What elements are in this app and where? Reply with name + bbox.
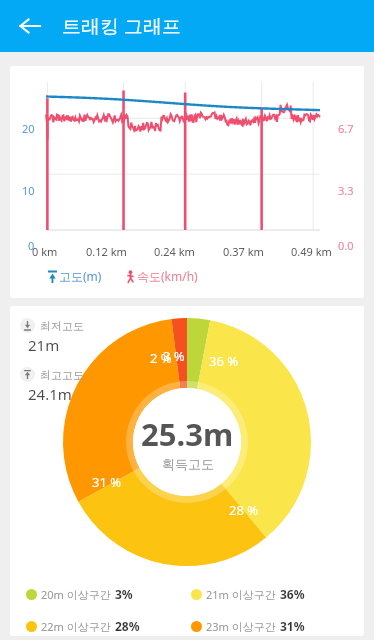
staticText: 최저고도 (40, 319, 84, 333)
staticText: 3.3 (338, 183, 354, 198)
staticText: 3 % (163, 347, 185, 365)
staticText: 22m 이상구간 (41, 619, 111, 634)
staticText: 0.24 km (154, 244, 195, 259)
staticText: 0.49 km (291, 244, 332, 259)
staticText: 고도(m) (59, 268, 102, 284)
staticText: 0.0 (338, 238, 354, 253)
button[interactable]: Back (8, 4, 52, 48)
staticText: 6.7 (338, 121, 354, 136)
staticText: 31 % (92, 473, 122, 491)
staticText: 31% (280, 618, 305, 634)
staticText: 획득고도 (162, 456, 214, 472)
staticText: 28% (115, 618, 140, 634)
staticText: 0.12 km (86, 244, 127, 259)
button[interactable]: 22m 이상구간 (26, 618, 191, 634)
button[interactable]: 20m 이상구간 (26, 586, 191, 602)
staticText: 36 % (209, 352, 239, 370)
staticText: 10 (22, 183, 35, 198)
staticText: 28 % (229, 501, 259, 519)
staticText: 0 (28, 238, 35, 253)
staticText: 최고고도 (40, 368, 84, 382)
staticText: 21m 이상구간 (206, 587, 276, 602)
staticText: 24.1m (28, 384, 72, 404)
staticText: 20m 이상구간 (41, 587, 111, 602)
staticText: 23m 이상구간 (206, 619, 276, 634)
button[interactable]: 36 % (63, 318, 311, 566)
button[interactable]: 21m 이상구간 (191, 586, 356, 602)
staticText: 21m (28, 335, 60, 355)
staticText: 2 % (150, 349, 172, 367)
button[interactable]: 23m 이상구간 (191, 618, 356, 634)
staticText: 3% (115, 586, 133, 602)
staticText: 20 (22, 121, 35, 136)
staticText: 36% (280, 586, 305, 602)
staticText: 25.3m (141, 413, 234, 455)
staticText: 0 km (32, 244, 58, 259)
staticText: 트래킹 그래프 (62, 13, 181, 39)
staticText: 속도(km/h) (137, 268, 198, 284)
staticText: 0.37 km (223, 244, 264, 259)
